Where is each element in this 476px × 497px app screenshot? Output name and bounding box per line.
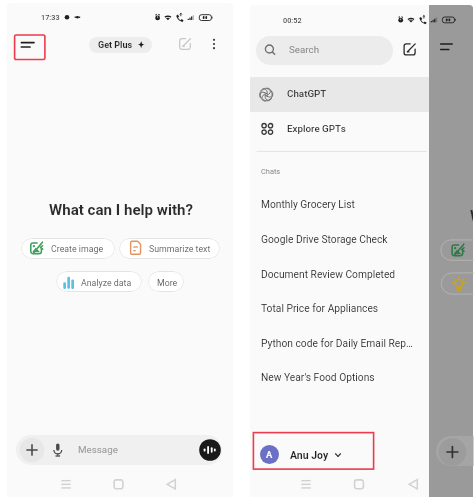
button[interactable]: Python code for Daily Email Rep… [256, 328, 423, 358]
staticText: A [266, 449, 273, 460]
staticText: Total Price for Appliances [261, 302, 379, 314]
staticText: Anu Joy [290, 449, 329, 461]
staticText: Summarize text [149, 244, 211, 254]
button[interactable]: Open navigation menu [15, 35, 45, 60]
button[interactable] [21, 238, 115, 259]
button[interactable]: New Year's Food Options [256, 362, 423, 392]
staticText: Monthly Grocery List [261, 198, 355, 210]
staticText: What can I help with? [49, 201, 193, 219]
button[interactable] [148, 271, 184, 292]
staticText: 00:52 [283, 16, 302, 25]
button[interactable] [56, 271, 142, 292]
staticText: Search [289, 44, 320, 55]
staticText: What can I help with? [470, 207, 473, 225]
staticText: Chats [261, 167, 281, 176]
staticText: Python code for Daily Email Rep… [261, 337, 413, 349]
button[interactable] [256, 36, 393, 65]
button[interactable]: New chat [177, 36, 194, 53]
button[interactable]: Total Price for Appliances [256, 293, 423, 323]
staticText: Message [78, 444, 118, 455]
staticText: ChatGPT [287, 88, 327, 99]
staticText: More [157, 278, 178, 288]
button[interactable]: New chat [402, 41, 420, 59]
button[interactable]: More options [206, 36, 222, 53]
staticText: Google Drive Storage Check [261, 233, 388, 245]
button[interactable] [250, 77, 429, 112]
button[interactable] [253, 433, 373, 470]
staticText: 17:33 [41, 13, 60, 22]
button[interactable]: Monthly Grocery List [256, 189, 423, 219]
button[interactable]: Google Drive Storage Check [256, 224, 423, 254]
staticText: Create image [51, 244, 104, 254]
button[interactable] [89, 37, 152, 53]
staticText: New Year's Food Options [261, 371, 375, 383]
staticText: Analyze data [81, 278, 132, 288]
staticText: Explore GPTs [287, 123, 346, 134]
staticText: Document Review Completed [261, 268, 396, 280]
button[interactable] [16, 435, 222, 465]
staticText: Get Plus [98, 40, 133, 51]
button[interactable] [250, 111, 429, 146]
button[interactable]: Document Review Completed [256, 259, 423, 289]
button[interactable] [119, 238, 220, 259]
